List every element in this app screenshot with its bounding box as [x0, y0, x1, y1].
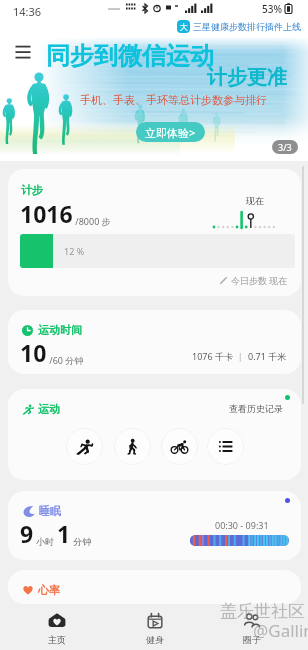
button[interactable]: 心率: [8, 570, 301, 604]
staticText: 0.71 千米: [248, 350, 287, 362]
staticText: 运动: [38, 402, 60, 416]
staticText: 1: [57, 518, 71, 549]
staticText: 三星健康步数排行插件上线: [193, 21, 301, 32]
staticText: 1076 千卡: [192, 350, 233, 362]
button[interactable]: More: [207, 428, 244, 465]
staticText: 健身: [146, 634, 164, 645]
staticText: |: [233, 350, 248, 362]
button[interactable]: 查看历史记录: [229, 403, 283, 414]
button[interactable]: 睡眠: [8, 491, 301, 560]
staticText: 00:30 - 09:31: [215, 519, 269, 531]
button[interactable]: 运动: [8, 389, 301, 480]
button[interactable]: Run: [66, 428, 103, 465]
staticText: 同步到微信运动: [46, 41, 214, 71]
staticText: 主页: [48, 634, 66, 645]
button[interactable]: 圈子: [203, 604, 300, 650]
staticText: 53%: [262, 2, 282, 16]
staticText: 运动时间: [38, 323, 82, 337]
staticText: /8000 步: [73, 215, 111, 227]
staticText: 圈子: [243, 634, 261, 645]
staticText: 10: [20, 337, 47, 368]
staticText: 大: [180, 22, 188, 32]
staticText: 盖乐世社区: [220, 601, 305, 622]
staticText: 9: [20, 518, 34, 549]
staticText: 立即体验>: [145, 125, 196, 140]
staticText: 心率: [38, 583, 60, 597]
staticText: 现在: [246, 195, 264, 206]
staticText: 手机、手表、手环等总计步数参与排行: [80, 93, 267, 107]
button[interactable]: Cycle: [161, 428, 198, 465]
staticText: 1016: [20, 198, 73, 229]
staticText: 今日步数 现在: [231, 274, 288, 286]
button[interactable]: Menu: [12, 40, 34, 62]
button[interactable]: Walk: [114, 428, 151, 465]
staticText: 计步更准: [207, 65, 287, 90]
button[interactable]: 计步: [8, 169, 301, 296]
staticText: /60 分钟: [47, 354, 84, 366]
button[interactable]: 健身: [106, 604, 203, 650]
staticText: 14:36: [13, 4, 42, 19]
button[interactable]: 运动时间: [8, 310, 301, 374]
button[interactable]: 立即体验>: [136, 122, 205, 142]
staticText: 12 %: [64, 245, 85, 257]
button[interactable]: 主页: [8, 604, 106, 650]
staticText: 分钟: [71, 535, 92, 547]
staticText: @Gallin: [253, 619, 308, 642]
staticText: 睡眠: [39, 504, 61, 518]
staticText: 3/3: [278, 141, 292, 153]
staticText: 小时: [34, 535, 57, 547]
staticText: 计步: [21, 183, 43, 197]
